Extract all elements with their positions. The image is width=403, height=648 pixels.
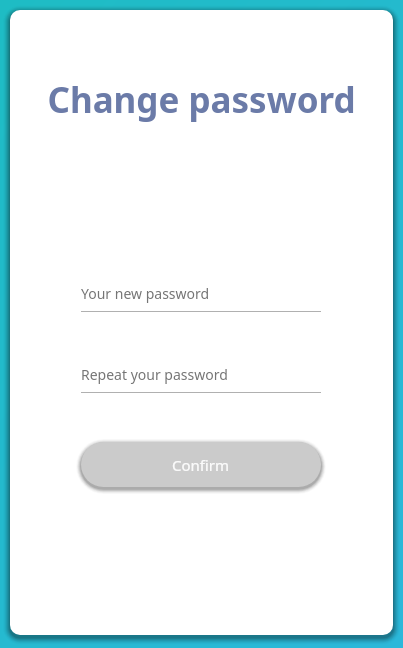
staticText: Confirm	[172, 455, 230, 475]
button[interactable]: Repeat your password	[81, 365, 321, 393]
staticText: Your new password	[81, 284, 210, 303]
staticText: Change password	[46, 76, 357, 124]
button[interactable]: Confirm	[81, 442, 321, 487]
staticText: Repeat your password	[81, 365, 228, 384]
button[interactable]: Your new password	[81, 284, 321, 312]
